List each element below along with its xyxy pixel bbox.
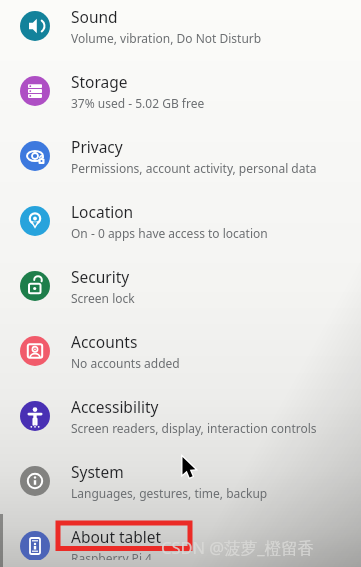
button[interactable]: Location	[0, 188, 361, 253]
staticText: Security	[71, 266, 130, 287]
staticText: System	[71, 461, 124, 482]
staticText: Sound	[71, 6, 118, 27]
staticText: Screen readers, display, interaction con…	[71, 420, 317, 436]
button[interactable]: Accounts	[0, 318, 361, 383]
staticText: No accounts added	[71, 355, 180, 371]
staticText: Volume, vibration, Do Not Disturb	[71, 30, 262, 46]
staticText: On - 0 apps have access to location	[71, 225, 268, 241]
staticText: Storage	[71, 71, 128, 92]
button[interactable]: About tablet	[0, 513, 361, 560]
staticText: Languages, gestures, time, backup	[71, 485, 268, 501]
staticText: Accessibility	[71, 396, 159, 417]
button[interactable]: Storage	[0, 58, 361, 123]
staticText: Screen lock	[71, 290, 135, 306]
button[interactable]: Accessibility	[0, 383, 361, 448]
button[interactable]: Sound	[0, 0, 361, 58]
button[interactable]: Security	[0, 253, 361, 318]
button[interactable]: System	[0, 448, 361, 513]
button[interactable]: Privacy	[0, 123, 361, 188]
staticText: Permissions, account activity, personal …	[71, 160, 317, 176]
staticText: Raspberry Pi 4	[71, 550, 152, 560]
staticText: CSDN @菠萝_橙留香	[161, 536, 315, 559]
staticText: About tablet	[71, 526, 162, 547]
staticText: Location	[71, 201, 134, 222]
staticText: 37% used - 5.02 GB free	[71, 95, 205, 111]
staticText: Accounts	[71, 331, 138, 352]
staticText: Privacy	[71, 136, 123, 157]
